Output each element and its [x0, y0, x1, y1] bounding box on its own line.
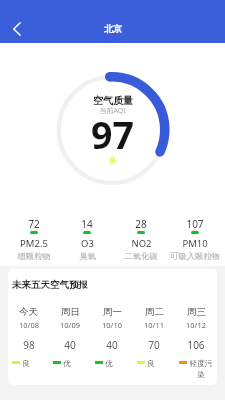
staticText: 优 [105, 359, 113, 368]
staticText: 107 [186, 217, 204, 231]
staticText: 14 [81, 217, 93, 231]
staticText: 周二 [145, 306, 164, 318]
button[interactable]: 周一 [91, 301, 133, 368]
staticText: 北京 [104, 23, 122, 34]
staticText: 10/08 [19, 320, 39, 330]
staticText: 周日 [61, 306, 80, 318]
staticText: 28 [135, 217, 147, 231]
button[interactable]: 今天 [8, 301, 49, 368]
staticText: 97 [91, 109, 134, 160]
staticText: 106 [187, 338, 205, 352]
staticText: 未来五天空气预报 [12, 279, 88, 291]
staticText: 70 [148, 338, 160, 352]
staticText: 10/09 [60, 320, 80, 330]
staticText: NO2 [131, 237, 152, 250]
button[interactable]: 14 [60, 217, 114, 261]
button[interactable]: 周日 [49, 301, 91, 368]
button[interactable]: 周三 [175, 301, 217, 379]
staticText: 周一 [103, 306, 122, 318]
staticText: 二氧化碳 [124, 251, 158, 261]
staticText: 细颗粒物 [17, 251, 51, 261]
staticText: PM10 [182, 237, 208, 250]
staticText: 优 [63, 359, 71, 368]
staticText: 轻度污染 [189, 359, 213, 379]
staticText: 良 [22, 359, 30, 368]
button[interactable]: 107 [168, 217, 222, 261]
staticText: 当前AQI [99, 106, 126, 116]
staticText: 臭氧 [79, 251, 96, 261]
staticText: O3 [81, 237, 94, 250]
button[interactable]: 72 [7, 217, 60, 261]
button[interactable]: 28 [114, 217, 168, 261]
staticText: 良 [109, 156, 117, 165]
button[interactable]: 周二 [133, 301, 175, 368]
staticText: 98 [23, 338, 35, 352]
staticText: 周三 [187, 306, 206, 318]
staticText: 40 [106, 338, 118, 352]
staticText: 10/12 [186, 320, 206, 330]
staticText: 10/11 [144, 320, 164, 330]
staticText: 72 [28, 217, 40, 231]
staticText: PM2.5 [20, 237, 48, 250]
staticText: 可吸入颗粒物 [170, 251, 220, 261]
staticText: 今天 [19, 306, 38, 318]
staticText: 空气质量 [93, 94, 133, 107]
staticText: 40 [64, 338, 76, 352]
staticText: 10/10 [102, 320, 122, 330]
button[interactable]: Back [7, 17, 27, 41]
staticText: 良 [147, 359, 155, 368]
